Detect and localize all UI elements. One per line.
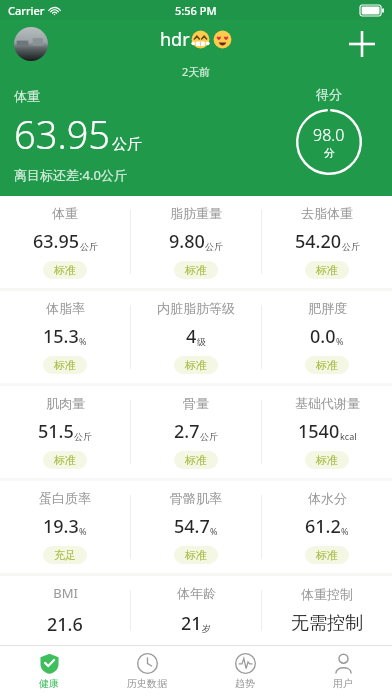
staticText: % — [336, 335, 344, 347]
staticText: 15.3 — [43, 324, 79, 349]
staticText: 公斤 — [74, 431, 92, 442]
staticText: 21.6 — [47, 612, 83, 637]
staticText: 体重 — [14, 88, 40, 104]
button[interactable]: 去脂体重 — [262, 196, 392, 288]
staticText: 分 — [324, 146, 335, 160]
staticText: 98.0 — [313, 124, 345, 146]
staticText: 公斤 — [112, 135, 142, 154]
staticText: 基础代谢量 — [295, 395, 360, 411]
staticText: hdr — [160, 27, 190, 52]
button[interactable]: BMI — [0, 576, 130, 645]
staticText: 脂肪重量 — [170, 205, 222, 221]
staticText: 趋势 — [235, 677, 255, 690]
staticText: 体水分 — [308, 490, 347, 506]
staticText: 体重控制 — [301, 586, 353, 602]
staticText: 19.3 — [43, 514, 79, 539]
staticText: 公斤 — [342, 241, 360, 252]
button[interactable]: 肌肉量 — [0, 386, 130, 478]
staticText: 岁 — [202, 623, 211, 634]
staticText: 5:56 PM — [175, 3, 217, 18]
button[interactable]: Score 98.0 — [296, 109, 362, 175]
staticText: 61.2 — [305, 514, 341, 539]
staticText: 标准 — [185, 453, 207, 467]
staticText: 健康 — [39, 677, 59, 690]
staticText: 51.5 — [38, 419, 74, 444]
staticText: 得分 — [316, 86, 342, 102]
button[interactable]: 内脏脂肪等级 — [131, 291, 261, 383]
staticText: 级 — [197, 336, 206, 347]
staticText: 63.95 — [33, 229, 80, 254]
staticText: 标准 — [54, 358, 76, 372]
button[interactable]: 用户 — [294, 646, 392, 696]
staticText: 充足 — [54, 548, 76, 562]
staticText: 去脂体重 — [301, 205, 353, 221]
button[interactable]: Add measurement — [342, 24, 382, 64]
staticText: 蛋白质率 — [39, 490, 91, 506]
staticText: 无需控制 — [291, 612, 363, 635]
button[interactable]: 体重控制 — [262, 576, 392, 645]
button[interactable]: 脂肪重量 — [131, 196, 261, 288]
button[interactable]: 骨量 — [131, 386, 261, 478]
staticText: 公斤 — [200, 431, 218, 442]
button[interactable]: 历史数据 — [98, 646, 196, 696]
staticText: 2天前 — [182, 64, 211, 79]
staticText: 肌肉量 — [46, 395, 85, 411]
staticText: 21 — [181, 611, 202, 636]
staticText: % — [79, 525, 87, 537]
button[interactable]: Profile photo — [14, 27, 48, 61]
staticText: kcal — [340, 430, 357, 442]
staticText: 体重 — [52, 205, 78, 221]
button[interactable]: 体重 — [0, 196, 130, 288]
staticText: 54.7 — [174, 514, 210, 539]
button[interactable]: 体年龄 — [131, 576, 261, 645]
staticText: 肥胖度 — [308, 300, 347, 316]
staticText: 体年龄 — [177, 585, 216, 601]
button[interactable]: 体脂率 — [0, 291, 130, 383]
staticText: 标准 — [316, 358, 338, 372]
staticText: 标准 — [316, 548, 338, 562]
staticText: % — [341, 525, 349, 537]
staticText: 历史数据 — [127, 677, 167, 690]
staticText: 标准 — [54, 263, 76, 277]
staticText: 标准 — [54, 453, 76, 467]
staticText: 标准 — [316, 453, 338, 467]
staticText: 9.80 — [169, 229, 205, 254]
button[interactable]: 体水分 — [262, 481, 392, 573]
staticText: 标准 — [185, 263, 207, 277]
staticText: 骨量 — [183, 395, 209, 411]
staticText: 54.20 — [295, 229, 342, 254]
staticText: Carrier — [8, 3, 45, 18]
staticText: 公斤 — [205, 241, 223, 252]
button[interactable]: 基础代谢量 — [262, 386, 392, 478]
button[interactable]: 健康 — [0, 646, 98, 696]
staticText: 标准 — [185, 548, 207, 562]
button[interactable]: 骨骼肌率 — [131, 481, 261, 573]
staticText: 离目标还差:4.0公斤 — [14, 166, 127, 184]
staticText: 0.0 — [310, 324, 336, 349]
staticText: % — [210, 525, 218, 537]
staticText: BMI — [53, 584, 78, 602]
staticText: 2.7 — [174, 419, 200, 444]
staticText: 骨骼肌率 — [170, 490, 222, 506]
button[interactable]: 趋势 — [196, 646, 294, 696]
staticText: 公斤 — [80, 241, 98, 252]
staticText: 标准 — [316, 263, 338, 277]
staticText: 标准 — [185, 358, 207, 372]
staticText: 63.95 — [14, 108, 111, 160]
button[interactable]: 肥胖度 — [262, 291, 392, 383]
staticText: 4 — [186, 324, 197, 349]
staticText: % — [79, 335, 87, 347]
staticText: 用户 — [333, 677, 353, 690]
button[interactable]: 蛋白质率 — [0, 481, 130, 573]
staticText: 1540 — [298, 419, 340, 444]
staticText: 体脂率 — [46, 300, 85, 316]
staticText: 内脏脂肪等级 — [157, 300, 235, 316]
